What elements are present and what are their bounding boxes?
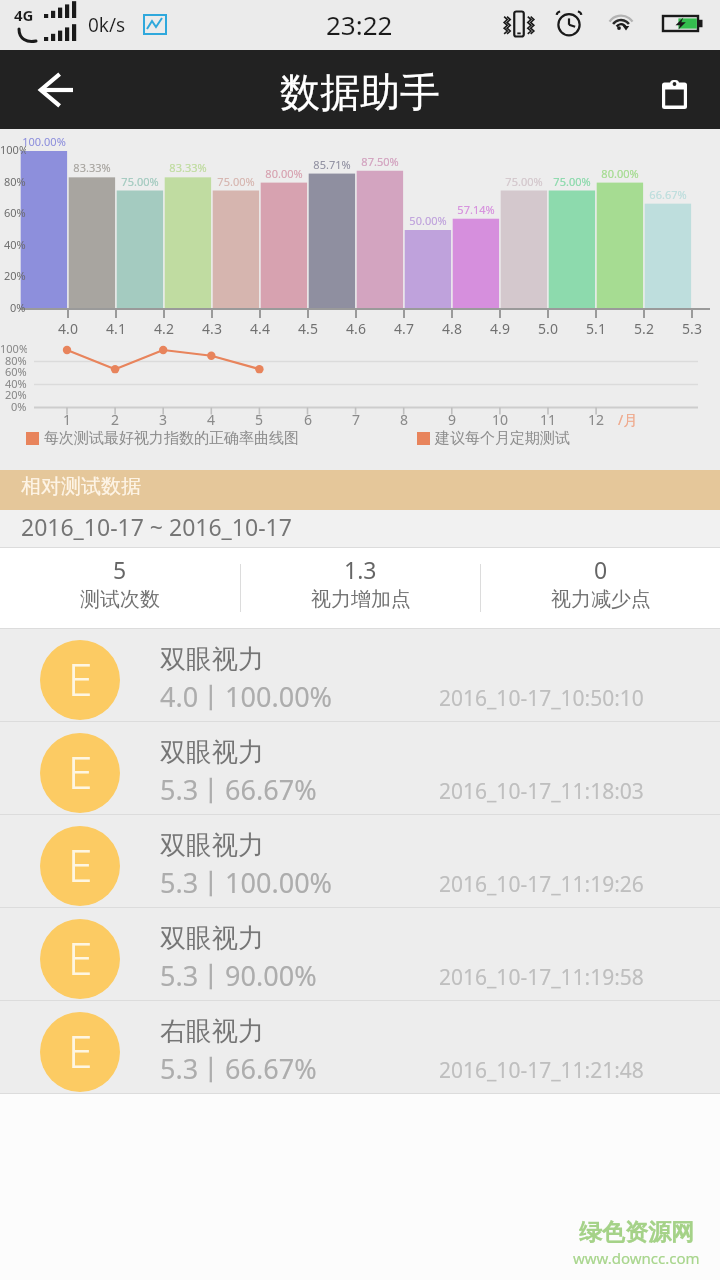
staticText: 4.7	[384, 319, 424, 338]
staticText: 5	[239, 410, 279, 429]
staticText: 双眼视力	[160, 829, 264, 862]
staticText: 2016_10-17_10:50:10	[439, 684, 644, 713]
staticText: 20%	[5, 387, 27, 402]
staticText: 80%	[4, 174, 26, 189]
staticText: 100%	[0, 341, 27, 356]
staticText: 2	[95, 410, 135, 429]
staticText: E	[68, 1021, 93, 1081]
staticText: 0k/s	[88, 12, 126, 38]
staticText: 40%	[5, 376, 27, 391]
staticText: 0	[594, 554, 608, 585]
staticText: 100%	[0, 142, 26, 157]
staticText: 测试次数	[80, 587, 160, 612]
staticText: 4.5	[288, 319, 328, 338]
staticText: 4.9	[480, 319, 520, 338]
staticText: 3	[143, 410, 183, 429]
staticText: 2016_10-17_11:19:26	[439, 870, 644, 899]
staticText: 4	[191, 410, 231, 429]
button[interactable]: E	[0, 1001, 720, 1093]
staticText: 10	[480, 410, 520, 429]
staticText: 4.2	[144, 319, 184, 338]
staticText: 87.50%	[340, 154, 420, 169]
staticText: 4.0丨100.00%	[160, 678, 333, 715]
staticText: 60%	[5, 364, 27, 379]
staticText: 5	[113, 554, 127, 585]
staticText: 20%	[4, 268, 26, 283]
button[interactable]: 1.3	[241, 548, 480, 628]
staticText: E	[68, 742, 93, 802]
staticText: 5.3丨100.00%	[160, 864, 333, 901]
staticText: 双眼视力	[160, 643, 264, 676]
staticText: 75.00%	[532, 174, 612, 189]
staticText: 50.00%	[388, 213, 468, 228]
staticText: 相对测试数据	[21, 474, 141, 499]
staticText: 2016_10-17_11:21:48	[439, 1056, 644, 1085]
staticText: 5.0	[528, 319, 568, 338]
button[interactable]: 0	[481, 548, 720, 628]
staticText: 2016_10-17_11:19:58	[439, 963, 644, 992]
staticText: E	[68, 835, 93, 895]
staticText: 4.6	[336, 319, 376, 338]
staticText: 85.71%	[292, 157, 372, 172]
staticText: 80.00%	[244, 166, 324, 181]
staticText: 4.8	[432, 319, 472, 338]
staticText: 0%	[10, 300, 26, 315]
staticText: 5.3丨66.67%	[160, 771, 317, 808]
staticText: /月	[618, 410, 638, 429]
staticText: 0%	[11, 399, 27, 414]
staticText: 4G	[14, 5, 34, 25]
staticText: 23:22	[326, 7, 393, 42]
staticText: 绿色资源网	[579, 1218, 694, 1247]
staticText: 6	[288, 410, 328, 429]
staticText: 9	[432, 410, 472, 429]
staticText: 视力减少点	[551, 587, 651, 612]
staticText: 60%	[4, 205, 26, 220]
staticText: 5.2	[624, 319, 664, 338]
staticText: 100.00%	[4, 134, 84, 149]
staticText: 75.00%	[100, 174, 180, 189]
staticText: E	[68, 649, 93, 709]
button[interactable]: 5	[0, 548, 240, 628]
staticText: 2016_10-17 ~ 2016_10-17	[21, 511, 292, 542]
button[interactable]: E	[0, 629, 720, 721]
staticText: 1	[47, 410, 87, 429]
staticText: 57.14%	[436, 202, 516, 217]
button[interactable]: E	[0, 908, 720, 1000]
staticText: www.downcc.com	[573, 1248, 700, 1268]
staticText: 视力增加点	[311, 587, 411, 612]
staticText: 1.3	[344, 554, 377, 585]
staticText: 80.00%	[580, 166, 660, 181]
staticText: 每次测试最好视力指数的正确率曲线图	[44, 429, 299, 448]
staticText: 建议每个月定期测试	[435, 429, 570, 448]
staticText: 数据助手	[280, 67, 440, 117]
staticText: 双眼视力	[160, 736, 264, 769]
button[interactable]: Back	[28, 62, 84, 118]
staticText: 40%	[4, 237, 26, 252]
staticText: 4.1	[96, 319, 136, 338]
staticText: 4.0	[48, 319, 88, 338]
staticText: 66.67%	[628, 187, 708, 202]
staticText: 75.00%	[484, 174, 564, 189]
staticText: 5.3	[672, 319, 712, 338]
staticText: 5.3丨90.00%	[160, 957, 317, 994]
staticText: 4.3	[192, 319, 232, 338]
staticText: 2016_10-17_11:18:03	[439, 777, 644, 806]
staticText: 5.3丨66.67%	[160, 1050, 317, 1087]
button[interactable]: Records	[644, 64, 704, 124]
button[interactable]: E	[0, 815, 720, 907]
staticText: 双眼视力	[160, 922, 264, 955]
button[interactable]: E	[0, 722, 720, 814]
staticText: 5.1	[576, 319, 616, 338]
staticText: 右眼视力	[160, 1015, 264, 1048]
staticText: 83.33%	[148, 160, 228, 175]
staticText: 83.33%	[52, 160, 132, 175]
staticText: 12	[576, 410, 616, 429]
staticText: 80%	[5, 353, 27, 368]
staticText: E	[68, 928, 93, 988]
staticText: 7	[336, 410, 376, 429]
staticText: 4.4	[240, 319, 280, 338]
staticText: 75.00%	[196, 174, 276, 189]
staticText: 8	[384, 410, 424, 429]
staticText: 11	[528, 410, 568, 429]
